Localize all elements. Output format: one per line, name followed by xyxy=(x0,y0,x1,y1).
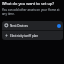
staticText: Nest Devices xyxy=(10,24,28,28)
staticText: You can add other assets on your Home at… xyxy=(2,8,62,16)
button[interactable]: Electricity xyxy=(2,31,63,40)
staticText: Electricity tariff plan xyxy=(10,34,39,38)
other: Electricity xyxy=(4,33,9,38)
other: Nest device xyxy=(4,23,9,28)
button[interactable]: Nest device xyxy=(2,21,63,30)
staticText: What do you want to set up? xyxy=(2,1,54,6)
